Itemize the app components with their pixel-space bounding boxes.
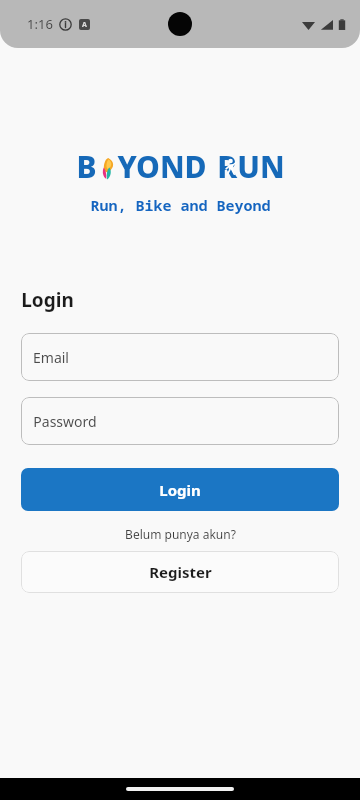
staticText: Belum punya akun? [125, 526, 236, 542]
staticText: Email [33, 348, 69, 367]
staticText: Login [159, 480, 201, 500]
button[interactable]: Login [21, 468, 339, 511]
button[interactable]: Register [21, 551, 339, 593]
staticText: A [82, 20, 87, 30]
staticText: Run, Bike and Beyond [90, 195, 271, 215]
staticText: RUN [217, 146, 285, 187]
button[interactable]: Password [21, 397, 339, 445]
staticText: B [76, 146, 97, 187]
staticText: Login [21, 287, 74, 313]
button[interactable]: Email [21, 333, 339, 381]
staticText: Password [33, 412, 97, 431]
staticText: Register [149, 562, 212, 582]
staticText: 1:16 [27, 15, 53, 33]
staticText: YOND [117, 146, 207, 187]
